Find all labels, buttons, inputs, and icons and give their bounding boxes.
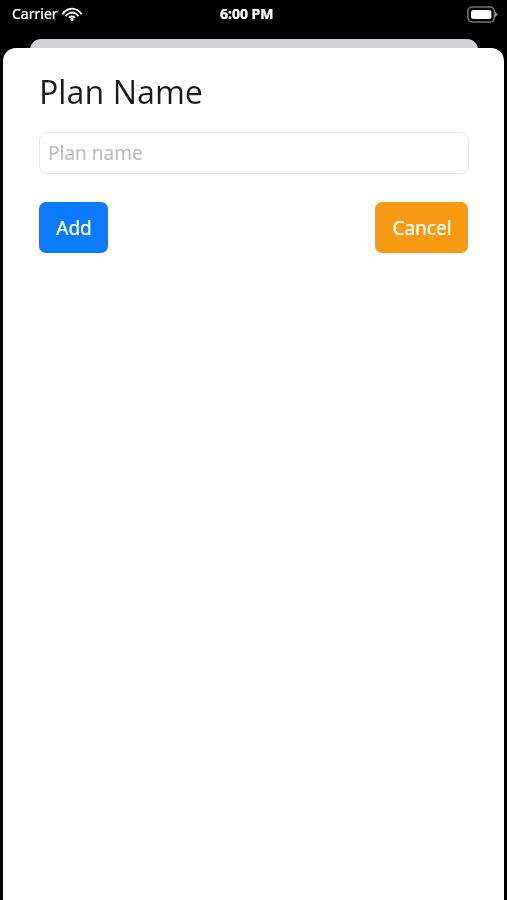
staticText: Plan Name	[39, 70, 203, 114]
staticText: Carrier	[12, 4, 58, 23]
staticText: Cancel	[392, 215, 452, 241]
button[interactable]: Cancel	[375, 202, 468, 253]
other: Wi-Fi signal	[64, 8, 80, 20]
button[interactable]: Plan name	[39, 132, 469, 174]
button[interactable]: Add	[39, 202, 108, 253]
staticText: Add	[56, 215, 92, 241]
staticText: 6:00 PM	[220, 4, 274, 23]
staticText: Plan name	[48, 140, 143, 166]
other: Battery full	[468, 7, 498, 22]
